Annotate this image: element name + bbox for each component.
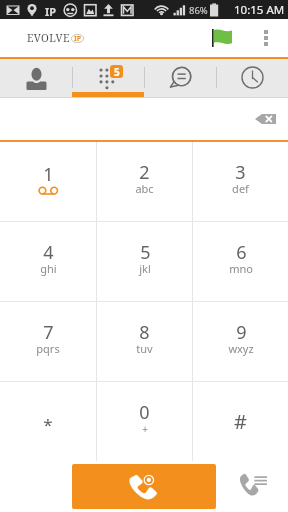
staticText: tuv	[136, 341, 153, 356]
button[interactable]: 2	[97, 142, 192, 221]
staticText: 5	[114, 65, 120, 78]
button[interactable]: 9	[193, 302, 288, 381]
button[interactable]: 3	[193, 142, 288, 221]
button[interactable]: Backspace	[252, 107, 279, 131]
staticText: 0	[139, 400, 150, 425]
staticText: +	[142, 422, 148, 436]
staticText: pqrs	[36, 341, 60, 356]
staticText: jkl	[139, 261, 151, 276]
staticText: 9	[236, 320, 247, 345]
staticText: ghi	[40, 261, 57, 276]
button[interactable]: 4	[0, 222, 96, 301]
button[interactable]: Dialpad	[72, 59, 144, 97]
button[interactable]: Call log	[236, 465, 270, 503]
staticText: 5	[140, 240, 151, 265]
staticText: 2	[139, 160, 150, 185]
button[interactable]: 6	[193, 222, 288, 301]
staticText: 7	[43, 320, 54, 345]
staticText: 4	[43, 240, 54, 265]
staticText: 1	[43, 162, 54, 187]
staticText: IP	[74, 34, 82, 43]
button[interactable]: 1	[0, 142, 96, 221]
staticText: #	[234, 408, 247, 435]
staticText: 86%	[189, 4, 208, 17]
staticText: wxyz	[228, 341, 254, 356]
button[interactable]: Flag	[206, 25, 237, 51]
staticText: 3	[235, 160, 246, 185]
button[interactable]: 8	[97, 302, 192, 381]
button[interactable]: More options	[253, 24, 279, 52]
staticText: IP	[45, 4, 57, 19]
button[interactable]: 5	[97, 222, 192, 301]
staticText: *	[43, 413, 53, 436]
staticText: 6	[236, 240, 247, 265]
button[interactable]: Messages	[144, 59, 216, 97]
button[interactable]: #	[193, 382, 288, 461]
button[interactable]: 7	[0, 302, 96, 381]
button[interactable]: History	[216, 59, 288, 97]
staticText: mno	[229, 261, 253, 276]
button[interactable]: 0	[97, 382, 192, 461]
staticText: 10:15 AM	[234, 2, 285, 18]
button[interactable]: Contacts	[0, 59, 72, 97]
staticText: abc	[135, 181, 154, 196]
button[interactable]: Call	[72, 464, 216, 509]
staticText: 8	[139, 320, 150, 345]
staticText: EVOLVE	[27, 31, 71, 45]
staticText: def	[232, 181, 249, 196]
button[interactable]: *	[0, 382, 96, 461]
